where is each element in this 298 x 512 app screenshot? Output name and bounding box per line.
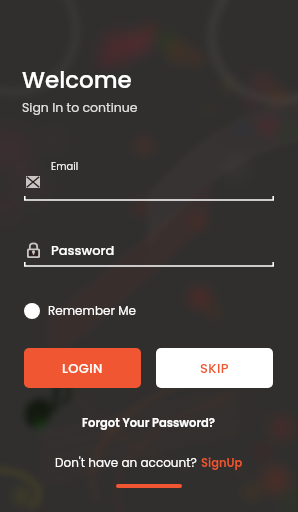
button[interactable]: SignUp: [201, 455, 243, 471]
staticText: Password: [51, 241, 115, 259]
staticText: Don't have an account?: [55, 454, 201, 471]
button[interactable]: LOGIN: [24, 348, 141, 388]
button[interactable]: SKIP: [156, 348, 273, 388]
staticText: Sign In to continue: [22, 99, 138, 116]
staticText: Forgot Your Password?: [82, 415, 216, 431]
staticText: Remember Me: [48, 302, 136, 319]
staticText: Email: [51, 159, 79, 173]
button[interactable]: Remember Me: [24, 302, 136, 319]
staticText: SKIP: [200, 359, 229, 377]
staticText: Welcome: [22, 64, 132, 96]
button[interactable]: Forgot Your Password?: [82, 415, 216, 431]
staticText: LOGIN: [62, 359, 103, 377]
